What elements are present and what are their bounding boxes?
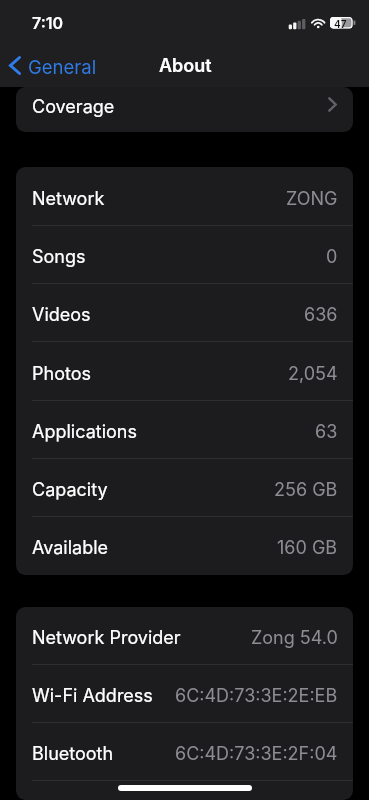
button[interactable]: Videos: [16, 284, 353, 342]
staticText: 256 GB: [274, 479, 338, 501]
staticText: 6C:4D:73:3E:2E:EB: [175, 685, 338, 707]
staticText: 6C:4D:73:3E:2F:04: [175, 743, 338, 765]
staticText: Capacity: [32, 479, 108, 501]
other: Back to General: [9, 56, 21, 75]
staticText: 0: [326, 246, 338, 268]
button[interactable]: Wi-Fi Address: [16, 665, 353, 723]
staticText: Zong 54.0: [251, 627, 338, 649]
staticText: Songs: [32, 246, 86, 268]
staticText: 636: [304, 304, 338, 326]
staticText: Network: [32, 188, 105, 210]
staticText: About: [159, 55, 212, 77]
staticText: Coverage: [32, 96, 115, 118]
staticText: Photos: [32, 363, 91, 385]
staticText: Bluetooth: [32, 743, 114, 765]
staticText: 63: [315, 421, 338, 443]
staticText: ZONG: [286, 188, 338, 210]
button[interactable]: Applications: [16, 401, 353, 459]
button[interactable]: Coverage: [16, 87, 353, 132]
button[interactable]: Network Provider: [16, 607, 353, 665]
button[interactable]: Songs: [16, 226, 353, 284]
staticText: Applications: [32, 421, 137, 443]
button[interactable]: [16, 781, 353, 800]
button[interactable]: Available: [16, 517, 353, 575]
staticText: 7:10: [32, 13, 64, 32]
staticText: 47: [334, 18, 347, 30]
staticText: 160 GB: [277, 537, 338, 559]
button[interactable]: Photos: [16, 342, 353, 401]
button[interactable]: Bluetooth: [16, 723, 353, 781]
staticText: Wi-Fi Address: [32, 685, 153, 707]
button[interactable]: Capacity: [16, 459, 353, 517]
staticText: 2,054: [288, 363, 338, 385]
staticText: Network Provider: [32, 627, 181, 649]
button[interactable]: Network: [16, 167, 353, 226]
staticText: Available: [32, 537, 109, 559]
staticText: General: [28, 56, 97, 78]
button[interactable]: Back to General: [0, 44, 107, 87]
staticText: Videos: [32, 304, 91, 326]
